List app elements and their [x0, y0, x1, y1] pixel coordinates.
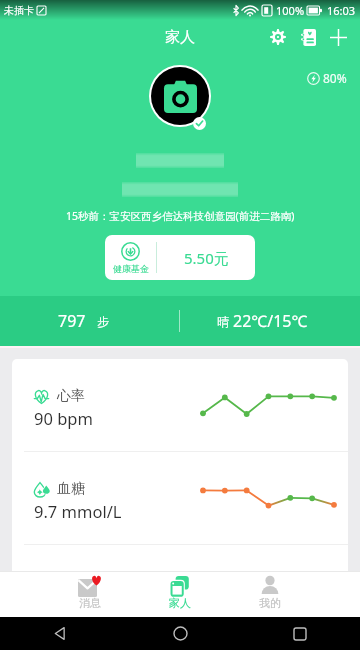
staticText: 5.50元	[184, 248, 229, 268]
staticText: 血糖	[57, 480, 85, 498]
button[interactable]: 添加	[323, 20, 353, 54]
staticText: 22℃/15℃	[233, 310, 308, 332]
staticText: 9.7 mmol/L	[34, 500, 122, 522]
staticText: 90 bpm	[34, 407, 93, 429]
button[interactable]: 消息	[45, 572, 135, 617]
button[interactable]: 头像	[151, 67, 209, 125]
staticText: 步	[97, 314, 109, 329]
staticText: 797	[58, 310, 86, 332]
button[interactable]: 晴	[180, 296, 360, 346]
button[interactable]: 返回	[0, 617, 120, 650]
staticText: 未插卡	[4, 4, 34, 17]
staticText: 100%	[276, 3, 305, 18]
staticText: 15秒前：宝安区西乡信达科技创意园(前进二路南)	[66, 209, 295, 223]
button[interactable]: 最近任务	[240, 617, 360, 650]
button[interactable]: 设置	[263, 20, 293, 54]
staticText: 消息	[79, 596, 101, 610]
button[interactable]: 主页	[120, 617, 240, 650]
button[interactable]: 797	[0, 296, 179, 346]
button[interactable]: 家人	[135, 572, 225, 617]
button[interactable]: 血糖	[12, 452, 348, 544]
button[interactable]: 我的	[225, 572, 315, 617]
staticText: 16:03	[327, 3, 356, 18]
button[interactable]: 心率	[12, 359, 348, 451]
staticText: 80%	[323, 70, 347, 86]
staticText: 健康基金	[113, 263, 149, 274]
staticText: 家人	[169, 596, 191, 610]
staticText: 家人	[165, 28, 195, 47]
staticText: 我的	[259, 596, 281, 610]
button[interactable]: 健康基金	[105, 235, 255, 280]
button[interactable]: 通讯录	[293, 20, 323, 54]
staticText: 晴	[217, 314, 229, 329]
staticText: 心率	[57, 387, 85, 405]
